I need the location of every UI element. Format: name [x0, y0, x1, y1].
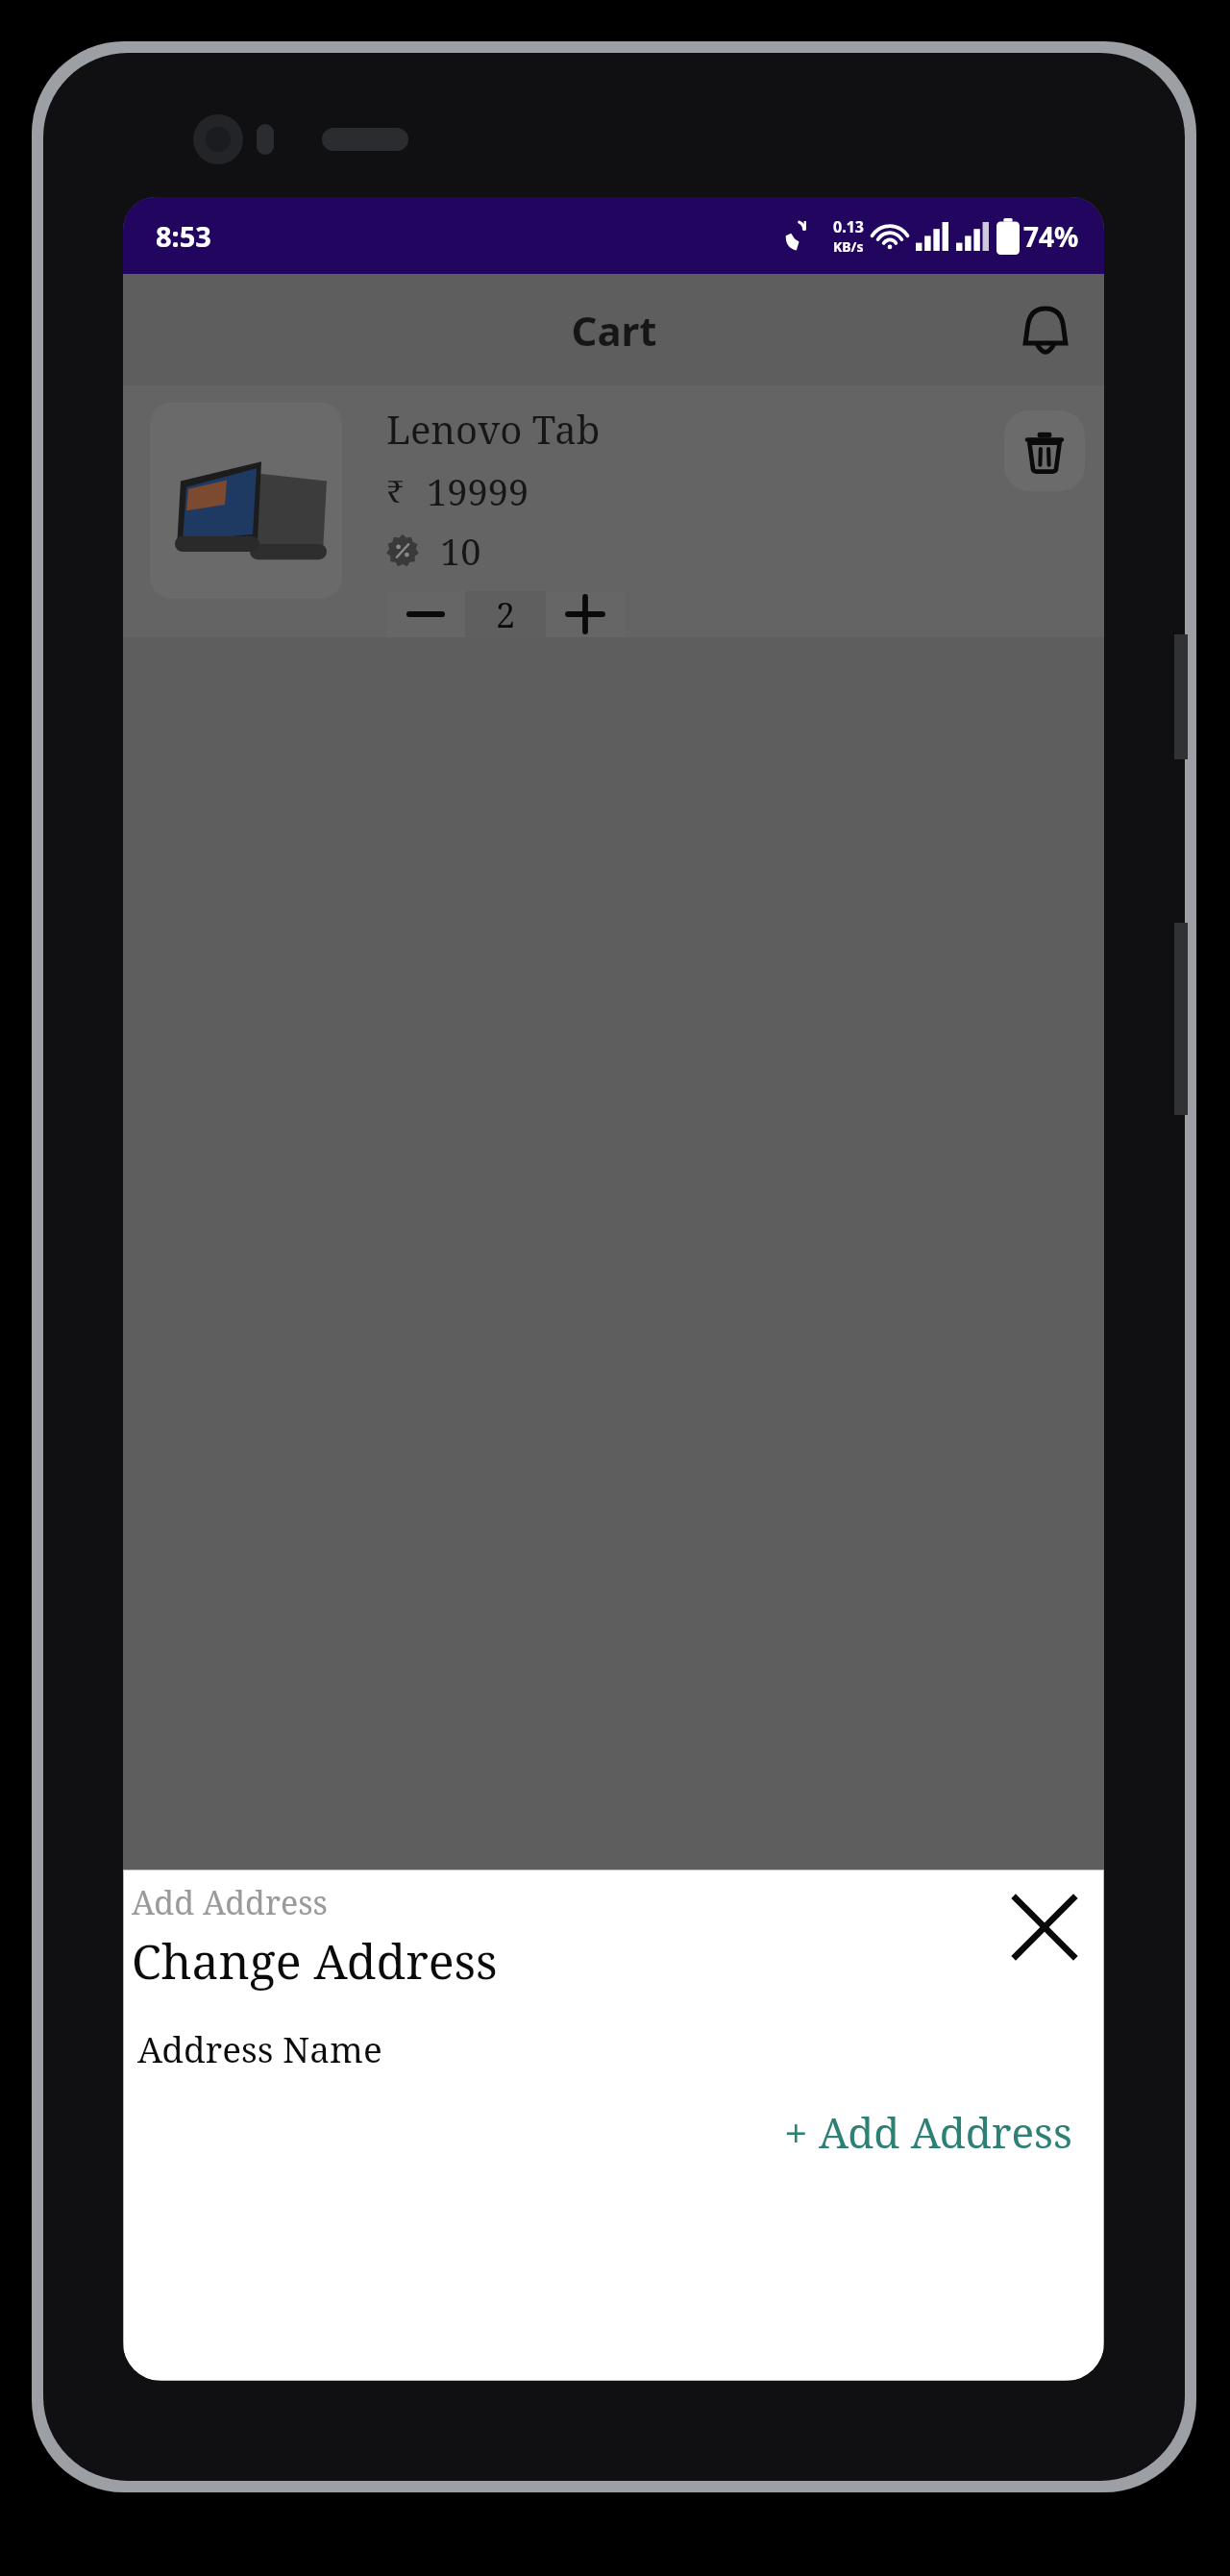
staticText: Cart [571, 303, 657, 358]
button[interactable]: Notifications [1004, 288, 1087, 371]
button[interactable]: Lenovo Tab [123, 385, 1104, 637]
staticText: Address Name [137, 2024, 382, 2072]
staticText: 19999 [427, 466, 529, 516]
button[interactable]: Close [1007, 1890, 1082, 1965]
staticText: 8:53 [156, 217, 211, 255]
staticText: KB/s [833, 237, 864, 256]
staticText: Add Address [132, 1880, 328, 1924]
staticText: 74% [1023, 218, 1079, 255]
staticText: ₹ [386, 470, 404, 512]
button[interactable]: Delete item [1004, 410, 1085, 491]
button[interactable]: Increase quantity [546, 591, 625, 637]
staticText: 2 [496, 591, 516, 637]
staticText: 10 [440, 526, 481, 576]
staticText: Lenovo Tab [386, 403, 601, 455]
button[interactable]: Decrease quantity [386, 591, 465, 637]
staticText: 0.13 [833, 216, 864, 237]
staticText: Change Address [132, 1928, 498, 1994]
button[interactable]: + Add Address [778, 2099, 1078, 2165]
staticText: + Add Address [784, 2103, 1072, 2161]
